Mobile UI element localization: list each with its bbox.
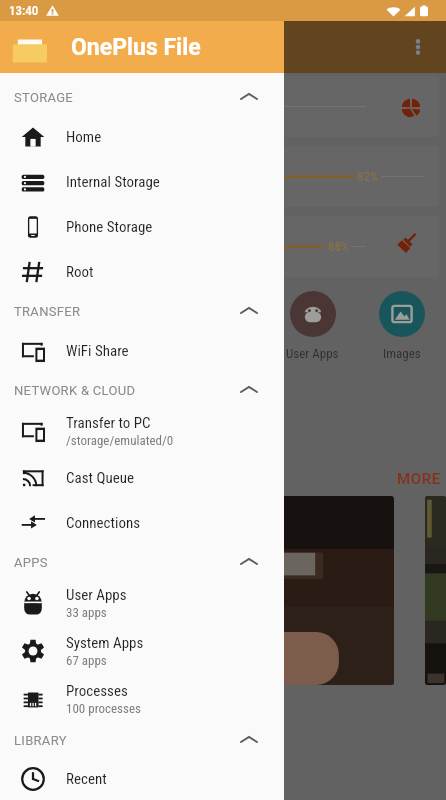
- button[interactable]: Internal Storage: [0, 159, 284, 204]
- button[interactable]: [0, 496, 394, 685]
- staticText: Internal Storage: [66, 173, 160, 191]
- staticText: Downloads: [17, 346, 74, 361]
- staticText: Images: [383, 346, 421, 361]
- button[interactable]: Home: [0, 114, 284, 159]
- staticText: STORAGE: [14, 90, 74, 105]
- button[interactable]: 82%: [7, 146, 439, 207]
- button[interactable]: Apks: [179, 291, 268, 368]
- button[interactable]: NETWORK & CLOUD: [0, 373, 284, 407]
- button[interactable]: Transfer to PC: [0, 407, 284, 455]
- staticText: User Apps: [66, 586, 127, 604]
- button[interactable]: LIBRARY: [0, 723, 284, 757]
- button[interactable]: Processes: [0, 675, 284, 723]
- staticText: 13:40: [9, 3, 39, 18]
- button[interactable]: Recent: [0, 757, 284, 800]
- button[interactable]: Downloads: [0, 291, 90, 368]
- staticText: Connections: [66, 514, 141, 532]
- staticText: NETWORK & CLOUD: [14, 383, 136, 398]
- staticText: Root: [66, 263, 94, 281]
- staticText: Processes: [66, 682, 128, 700]
- staticText: /storage/emulated/0: [66, 433, 174, 448]
- staticText: APPS: [14, 555, 48, 570]
- button[interactable]: Root: [0, 249, 284, 294]
- staticText: 33 apps: [66, 605, 107, 620]
- staticText: WiFi Share: [66, 342, 129, 360]
- button[interactable]: User Apps: [268, 291, 357, 368]
- button[interactable]: STORAGE: [0, 80, 284, 114]
- button[interactable]: More options: [396, 25, 440, 69]
- button[interactable]: TRANSFER: [0, 294, 284, 328]
- staticText: Recent: [66, 770, 107, 788]
- staticText: Home: [66, 128, 102, 146]
- button[interactable]: Cast Queue: [0, 455, 284, 500]
- button[interactable]: System Apps: [0, 627, 284, 675]
- button[interactable]: Phone Storage: [0, 204, 284, 249]
- staticText: User Apps: [286, 346, 339, 361]
- staticText: TRANSFER: [14, 304, 81, 319]
- button[interactable]: Documents: [90, 291, 179, 368]
- staticText: Cast Queue: [66, 469, 134, 487]
- staticText: OnePlus File: [71, 34, 201, 61]
- staticText: LIBRARY: [14, 733, 67, 748]
- staticText: 100 processes: [66, 701, 141, 716]
- button[interactable]: 88%: [7, 216, 439, 277]
- staticText: MORE: [397, 470, 441, 488]
- staticText: Transfer to PC: [66, 414, 151, 432]
- staticText: 82%: [357, 169, 379, 184]
- button[interactable]: [7, 76, 439, 137]
- button[interactable]: Images: [357, 291, 446, 368]
- staticText: System Apps: [66, 634, 144, 652]
- staticText: Documents: [105, 346, 164, 361]
- button[interactable]: Connections: [0, 500, 284, 545]
- button[interactable]: User Apps: [0, 579, 284, 627]
- staticText: Phone Storage: [66, 218, 153, 236]
- staticText: 88%: [328, 239, 350, 254]
- button[interactable]: MORE: [394, 468, 444, 490]
- button[interactable]: APPS: [0, 545, 284, 579]
- staticText: 67 apps: [66, 653, 107, 668]
- button[interactable]: WiFi Share: [0, 328, 284, 373]
- button[interactable]: [425, 496, 446, 685]
